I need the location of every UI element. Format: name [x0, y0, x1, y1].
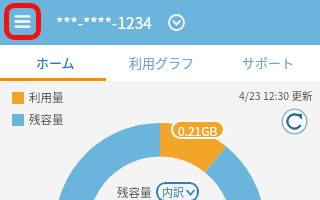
staticText: 利用量 — [29, 89, 64, 106]
staticText: 4/23 12:30 更新 — [239, 88, 313, 103]
button[interactable]: Select phone line — [168, 14, 185, 31]
staticText: 0.21GB — [178, 122, 218, 137]
staticText: 残容量 — [29, 111, 64, 128]
staticText: 利用グラフ — [129, 53, 195, 72]
staticText: ***-****-1234 — [56, 11, 152, 33]
staticText: ホーム — [36, 53, 75, 72]
staticText: サポート — [242, 53, 295, 72]
staticText: 内訳 — [162, 184, 184, 200]
button[interactable]: 利用グラフ — [106, 45, 213, 81]
staticText: 残容量 — [117, 184, 152, 200]
button[interactable]: サポート — [213, 45, 320, 81]
button[interactable]: ホーム — [0, 45, 106, 81]
button[interactable]: 内訳 — [156, 182, 199, 200]
button[interactable]: Menu — [4, 3, 41, 40]
button[interactable]: Refresh — [281, 108, 308, 135]
